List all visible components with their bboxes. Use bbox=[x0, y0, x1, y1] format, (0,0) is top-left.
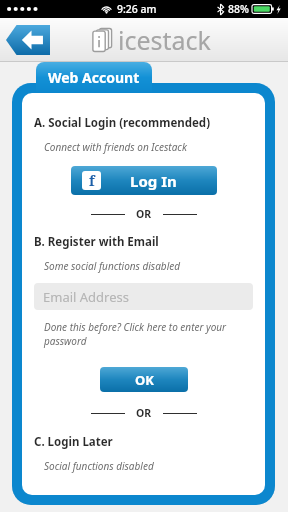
staticText: Email Address bbox=[43, 288, 129, 306]
button[interactable]: Back bbox=[6, 25, 50, 55]
staticText: A. Social Login (recommended) bbox=[34, 115, 211, 131]
staticText: Done this before? Click here to enter yo… bbox=[44, 320, 253, 348]
staticText: OR bbox=[136, 207, 152, 221]
staticText: Log In bbox=[130, 171, 177, 191]
button[interactable]: Email Address bbox=[34, 283, 253, 310]
staticText: Connect with friends on Icestack bbox=[44, 140, 187, 154]
staticText: C. Login Later bbox=[34, 434, 113, 450]
staticText: Social functions disabled bbox=[44, 459, 154, 473]
staticText: OR bbox=[136, 406, 152, 420]
staticText: Some social functions disabled bbox=[44, 259, 180, 273]
staticText: B. Register with Email bbox=[34, 234, 159, 250]
staticText: f bbox=[89, 171, 95, 190]
button[interactable]: f bbox=[71, 166, 217, 195]
staticText: Web Account bbox=[48, 68, 140, 87]
staticText: icestack bbox=[118, 23, 211, 57]
staticText: 9:26 am bbox=[117, 2, 157, 16]
button[interactable]: OK bbox=[100, 367, 188, 392]
button[interactable]: Web Account bbox=[36, 62, 152, 93]
staticText: OK bbox=[135, 371, 154, 389]
staticText: 88% bbox=[228, 2, 249, 16]
